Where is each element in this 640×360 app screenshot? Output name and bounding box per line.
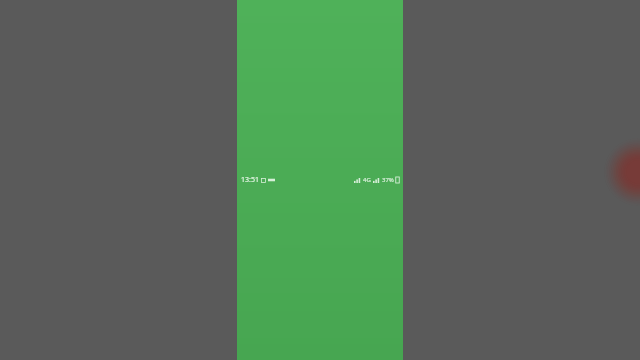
- staticText: 37%: [382, 176, 394, 184]
- staticText: 4G: [363, 176, 371, 184]
- other: Notification: [261, 178, 266, 183]
- other: Signal: [354, 178, 361, 183]
- other: Battery: [395, 177, 400, 183]
- staticText: 13:51: [241, 175, 259, 185]
